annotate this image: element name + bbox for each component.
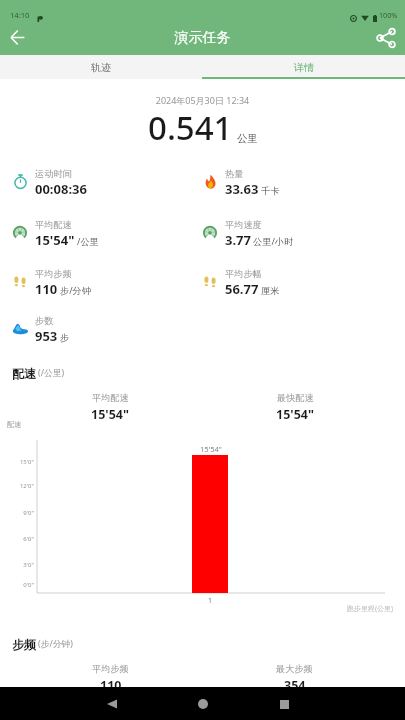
button[interactable]: Share xyxy=(372,24,399,51)
staticText: 千卡 xyxy=(261,185,280,197)
staticText: 3'0" xyxy=(6,561,34,569)
staticText: 33.63 xyxy=(225,180,259,198)
button[interactable]: Back xyxy=(97,689,127,719)
staticText: 最大步频 xyxy=(276,663,313,675)
staticText: 平均配速 xyxy=(92,392,129,404)
staticText: 953 xyxy=(35,327,58,345)
staticText: 配速 xyxy=(7,420,22,429)
staticText: 运动时间 xyxy=(35,168,72,180)
staticText: 公里 xyxy=(237,132,258,145)
staticText: 平均步频 xyxy=(92,663,129,675)
staticText: (/公里) xyxy=(38,367,65,379)
staticText: 演示任务 xyxy=(0,29,405,47)
button[interactable]: Home xyxy=(188,689,218,719)
staticText: (步/分钟) xyxy=(38,638,73,650)
staticText: 0.541 xyxy=(148,105,233,150)
staticText: 2024年05月30日 12:34 xyxy=(0,94,405,106)
staticText: 0'0" xyxy=(6,581,34,589)
staticText: 100% xyxy=(379,10,398,20)
staticText: 平均步幅 xyxy=(225,268,262,280)
staticText: 3.77 xyxy=(225,231,251,249)
staticText: 110 xyxy=(35,280,58,298)
staticText: 9'0" xyxy=(6,509,34,517)
staticText: /公里 xyxy=(77,235,99,248)
staticText: 14:10 xyxy=(10,10,30,20)
staticText: 详情 xyxy=(294,61,314,74)
staticText: 15'54" xyxy=(200,444,222,454)
staticText: 15'54" xyxy=(35,231,75,249)
staticText: 12'0" xyxy=(6,482,34,490)
staticText: 步 xyxy=(60,332,70,344)
staticText: 56.77 xyxy=(225,280,259,298)
staticText: 6'0" xyxy=(6,535,34,543)
button[interactable]: 详情 xyxy=(202,55,405,79)
staticText: 15'0" xyxy=(6,458,34,466)
staticText: 步频 xyxy=(12,637,36,652)
staticText: 步/分钟 xyxy=(60,284,91,297)
staticText: 15'54" xyxy=(91,406,129,423)
staticText: 热量 xyxy=(225,168,244,180)
staticText: 厘米 xyxy=(261,285,280,297)
staticText: 跑步里程(公里) xyxy=(347,604,394,614)
staticText: 公里/小时 xyxy=(253,235,294,248)
staticText: 354 xyxy=(284,677,306,694)
staticText: 最快配速 xyxy=(277,392,314,404)
staticText: 110 xyxy=(100,677,122,694)
staticText: 轨迹 xyxy=(91,61,111,74)
staticText: 步数 xyxy=(35,315,54,327)
staticText: 00:08:36 xyxy=(35,180,87,198)
staticText: 15'54" xyxy=(276,406,314,423)
button[interactable]: Back xyxy=(4,24,30,50)
staticText: 1 xyxy=(208,596,213,606)
staticText: 平均配速 xyxy=(35,219,72,231)
staticText: 平均速度 xyxy=(225,219,262,231)
staticText: 平均步频 xyxy=(35,268,72,280)
button[interactable]: 轨迹 xyxy=(0,55,202,79)
button[interactable]: Recents xyxy=(269,689,299,719)
staticText: 配速 xyxy=(12,366,36,381)
